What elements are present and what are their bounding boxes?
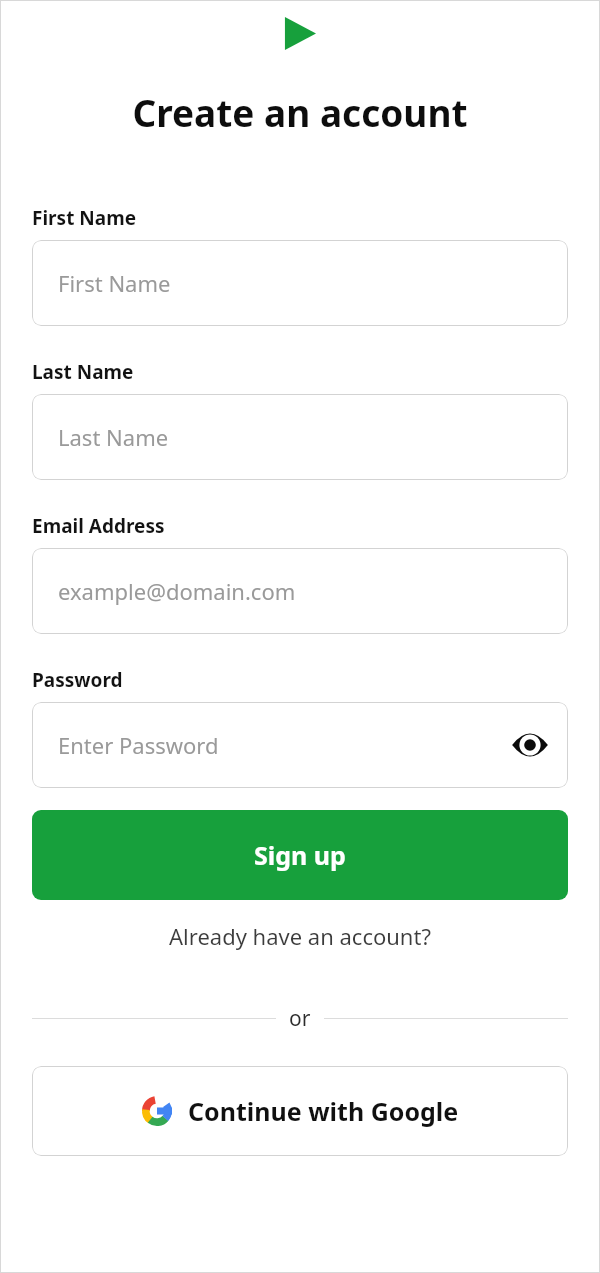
staticText: Last Name — [58, 422, 169, 452]
staticText: Create an account — [32, 87, 568, 137]
button[interactable]: Enter Password — [32, 702, 568, 788]
staticText: or — [289, 1004, 311, 1033]
button[interactable]: Continue with Google — [32, 1066, 568, 1156]
button[interactable]: Last Name — [32, 394, 568, 480]
button[interactable]: Sign up — [32, 810, 568, 900]
button[interactable]: example@domain.com — [32, 548, 568, 634]
staticText: Already have an account? — [169, 921, 431, 951]
button[interactable]: Already have an account? — [32, 921, 568, 951]
staticText: Continue with Google — [188, 1094, 459, 1128]
staticText: Sign up — [254, 838, 346, 872]
staticText: Enter Password — [58, 730, 219, 760]
staticText: First Name — [58, 268, 171, 298]
staticText: example@domain.com — [58, 576, 296, 606]
staticText: Last Name — [32, 359, 134, 385]
staticText: Password — [32, 667, 123, 693]
staticText: Email Address — [32, 513, 165, 539]
button[interactable]: Show password — [506, 721, 554, 769]
button[interactable]: First Name — [32, 240, 568, 326]
staticText: First Name — [32, 205, 137, 231]
